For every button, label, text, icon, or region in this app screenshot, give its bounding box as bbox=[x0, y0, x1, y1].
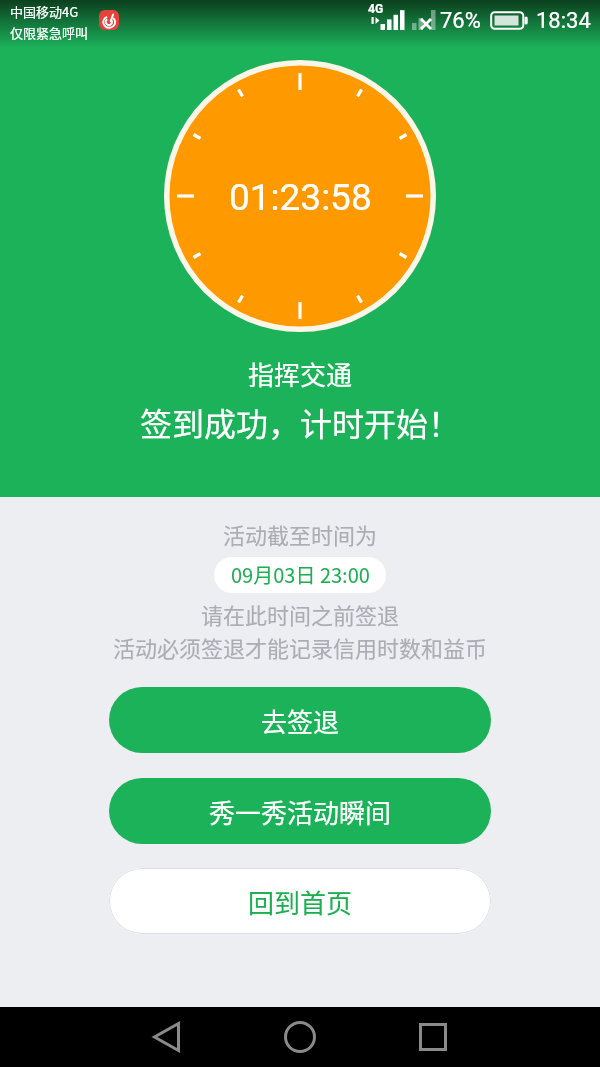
button[interactable]: 回到首页 bbox=[109, 868, 491, 934]
staticText: 18:34 bbox=[536, 8, 591, 34]
staticText: 中国移动4G bbox=[10, 2, 79, 21]
staticText: 01:23:58 bbox=[229, 176, 372, 219]
button[interactable]: Home bbox=[272, 1009, 328, 1065]
staticText: 去签退 bbox=[261, 702, 340, 740]
staticText: 回到首页 bbox=[248, 883, 353, 921]
staticText: 指挥交通 bbox=[248, 355, 353, 393]
staticText: 09月03日 23:00 bbox=[231, 560, 370, 589]
button[interactable]: Back bbox=[138, 1009, 194, 1065]
staticText: 签到成功，计时开始！ bbox=[140, 399, 461, 445]
button[interactable]: Recents bbox=[405, 1009, 461, 1065]
staticText: 秀一秀活动瞬间 bbox=[209, 793, 392, 831]
staticText: 活动必须签退才能记录信用时数和益币 bbox=[113, 631, 488, 663]
staticText: 仅限紧急呼叫 bbox=[10, 23, 89, 42]
staticText: 请在此时间之前签退 bbox=[201, 598, 400, 630]
staticText: 活动截至时间为 bbox=[223, 518, 378, 550]
button[interactable]: 去签退 bbox=[109, 687, 491, 753]
staticText: 76% bbox=[440, 8, 481, 34]
staticText: 4G bbox=[368, 2, 384, 16]
button[interactable]: 秀一秀活动瞬间 bbox=[109, 778, 491, 844]
